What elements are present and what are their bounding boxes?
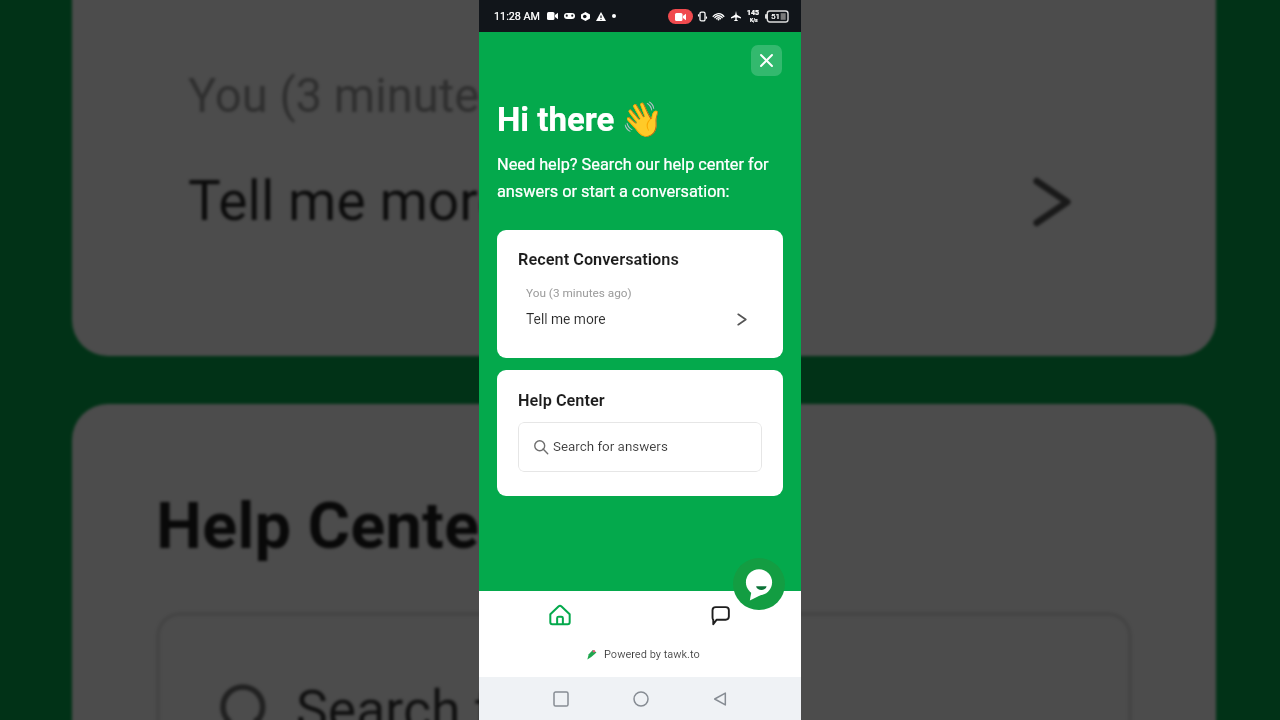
button[interactable]: Tell me more: [497, 311, 783, 327]
staticText: 145: [747, 9, 760, 17]
button[interactable]: Chat: [640, 591, 801, 639]
staticText: Powered by tawk.to: [604, 648, 700, 661]
button[interactable]: Home: [618, 677, 664, 720]
staticText: Help Center: [518, 391, 605, 410]
staticText: 51: [771, 12, 780, 21]
button[interactable]: Recent apps: [538, 677, 584, 720]
staticText: You (3 minutes ago): [188, 68, 612, 124]
staticText: Need help? Search our help center for an…: [497, 155, 785, 201]
staticText: You (3 minutes ago): [526, 286, 632, 300]
staticText: Search for answers: [553, 439, 668, 455]
button[interactable]: Tell me more: [72, 168, 1216, 232]
button[interactable]: Close: [751, 45, 782, 76]
staticText: Tell me more: [526, 311, 606, 327]
staticText: Tell me more: [188, 168, 508, 232]
staticText: Recent Conversations: [518, 250, 679, 269]
staticText: 11:28 AM: [494, 10, 541, 23]
button[interactable]: Search for answers: [518, 422, 762, 472]
staticText: 👋: [621, 99, 664, 139]
button[interactable]: Open chat: [733, 558, 785, 610]
button[interactable]: Search for answers: [156, 612, 1132, 720]
staticText: Search for answers: [296, 680, 756, 720]
staticText: K/s: [750, 17, 758, 23]
staticText: Hi there: [497, 100, 615, 139]
button[interactable]: Home: [479, 591, 640, 639]
staticText: Help Center: [156, 488, 504, 564]
button[interactable]: Back: [697, 677, 743, 720]
